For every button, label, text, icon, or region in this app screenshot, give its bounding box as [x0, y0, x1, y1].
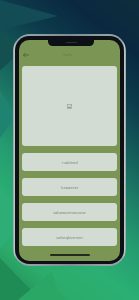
- button[interactable]: kaaaeeer: [22, 178, 117, 196]
- staticText: nabland: [62, 160, 78, 165]
- staticText: saheqbizmem: [56, 235, 83, 240]
- button[interactable]: Back: [20, 48, 32, 62]
- staticText: kaaaeeer: [61, 185, 79, 190]
- button[interactable]: nabland: [22, 153, 117, 171]
- button[interactable]: sabwaszmonazse: [22, 203, 117, 221]
- button[interactable]: saheqbizmem: [22, 228, 117, 246]
- button[interactable]: [22, 66, 117, 146]
- staticText: sabwaszmonazse: [53, 210, 86, 215]
- staticText: Tools: [63, 52, 72, 57]
